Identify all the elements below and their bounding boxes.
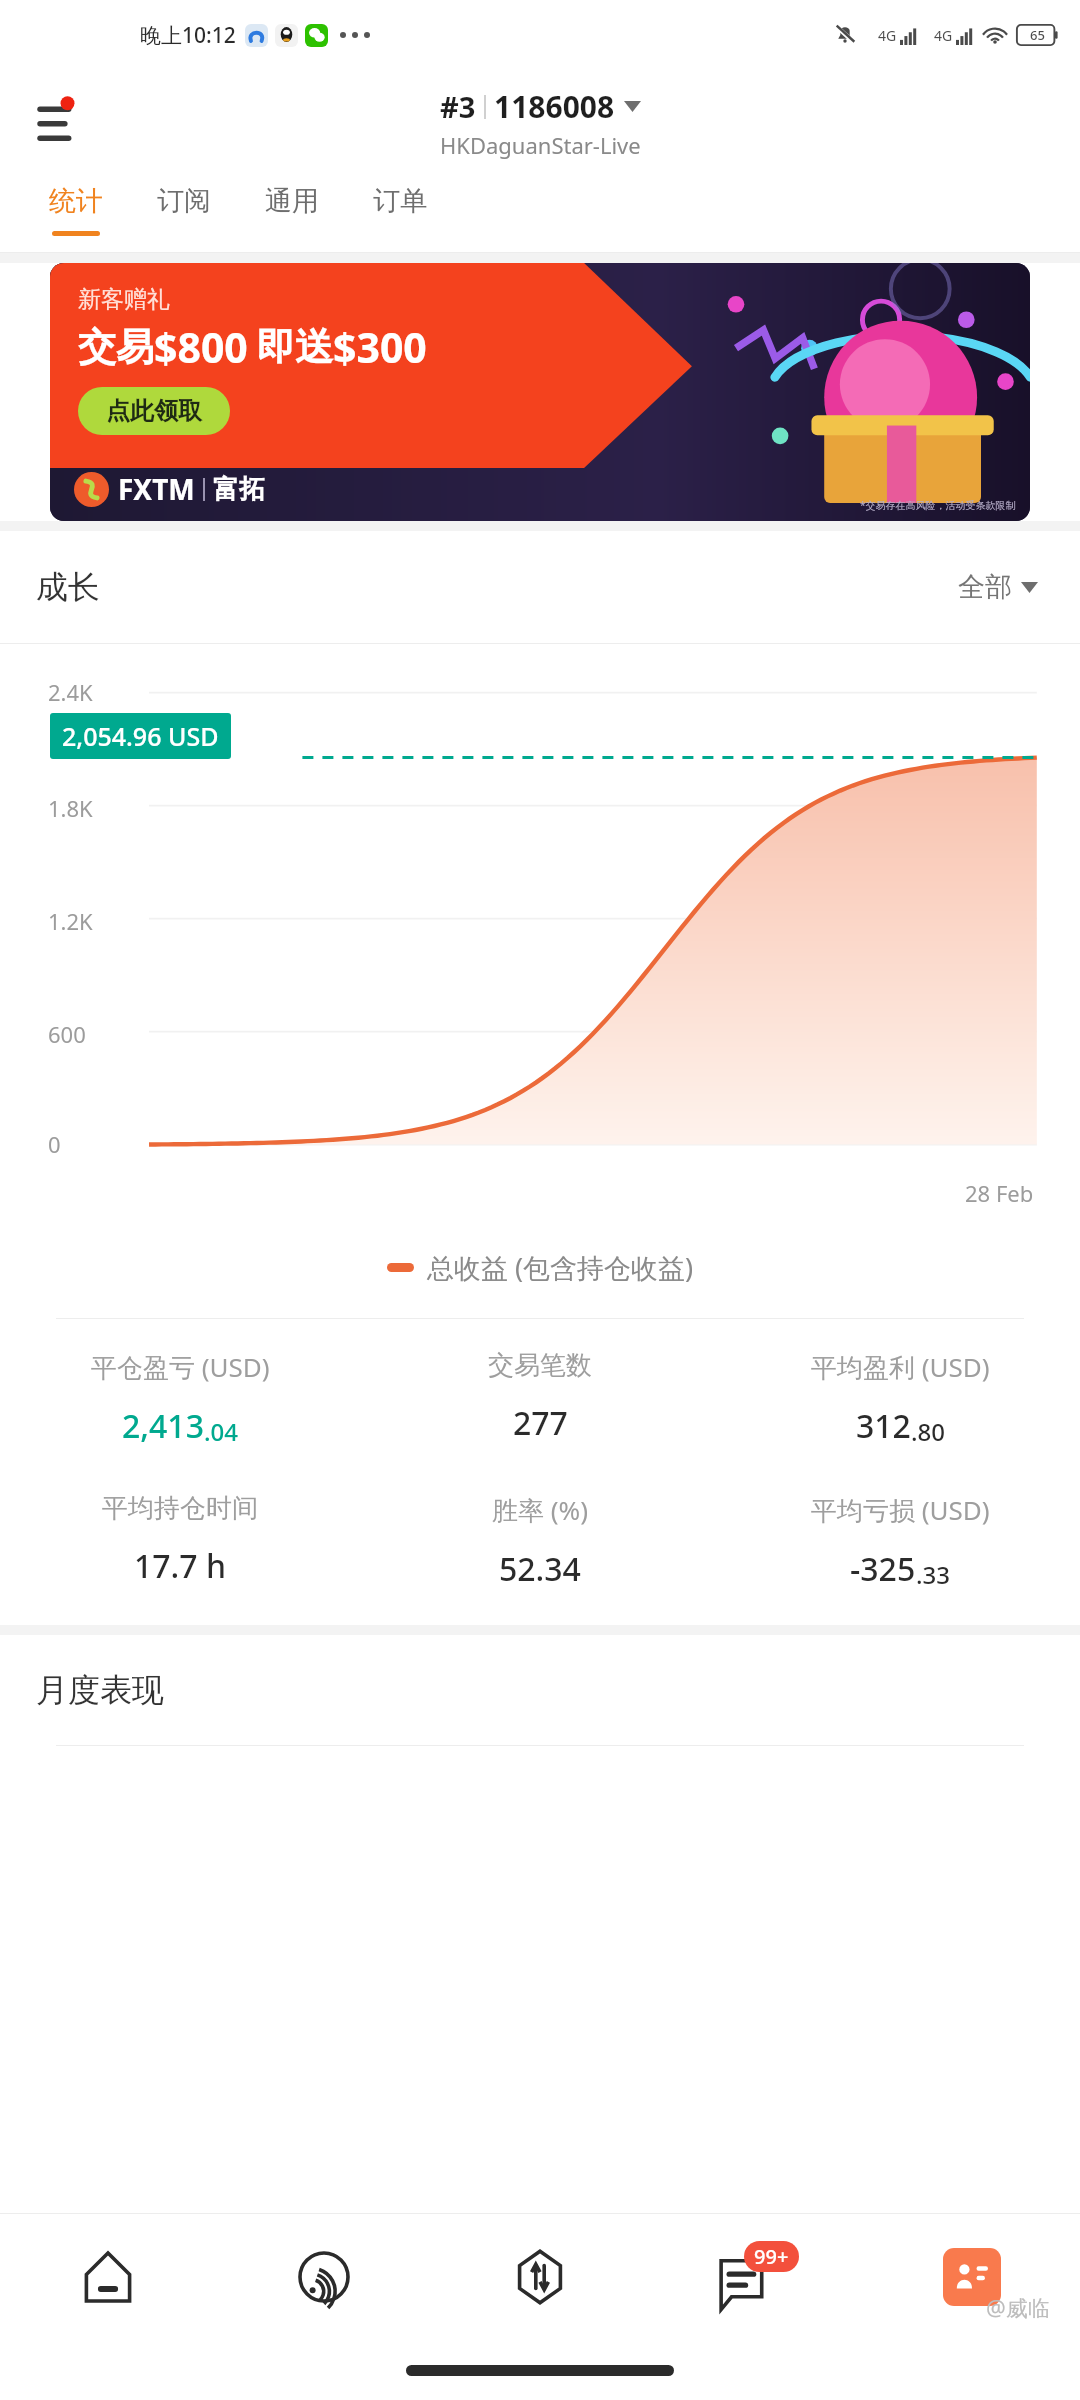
staticText: 即送 [257, 323, 333, 371]
staticText: *交易存在高风险，活动受条款限制 [860, 498, 1016, 512]
button[interactable]: 点此领取 [78, 387, 230, 435]
staticText: 平均盈利 (USD) [811, 1349, 990, 1385]
staticText: -325 [850, 1547, 916, 1591]
staticText: 交易笔数 [488, 1349, 592, 1382]
staticText: 全部 [958, 570, 1012, 604]
staticText: .80 [911, 1415, 945, 1448]
staticText: 4G [878, 26, 897, 45]
staticText: #3 [440, 87, 476, 126]
staticText: 0 [48, 1129, 61, 1159]
staticText: 312 [856, 1404, 911, 1448]
staticText: 新客赠礼 [78, 285, 170, 314]
staticText: 胜率 (%) [492, 1492, 588, 1528]
staticText: 17.7 h [134, 1544, 227, 1588]
button[interactable]: Profile [864, 2214, 1080, 2340]
button[interactable]: #3 [440, 86, 641, 160]
staticText: 28 Feb [965, 1178, 1034, 1208]
staticText: 点此领取 [106, 396, 202, 426]
staticText: 月度表现 [36, 1670, 164, 1710]
button[interactable]: Menu [32, 93, 92, 153]
button[interactable]: 全部 [952, 564, 1044, 610]
button[interactable]: 统计 [22, 176, 130, 252]
button[interactable]: 订阅 [130, 176, 238, 252]
button[interactable]: Home [0, 2214, 216, 2340]
staticText: 成长 [36, 567, 100, 607]
staticText: 平仓盈亏 (USD) [91, 1349, 270, 1385]
staticText: 1186008 [494, 86, 615, 127]
staticText: .33 [916, 1558, 950, 1591]
staticText: 1.8K [48, 793, 93, 823]
staticText: 600 [48, 1019, 86, 1049]
staticText: FXTM [118, 470, 195, 508]
staticText: .04 [204, 1415, 238, 1448]
staticText: 4G [934, 26, 953, 45]
staticText: HKDaguanStar-Live [440, 130, 641, 160]
staticText: 晚上10:12 [140, 21, 236, 50]
staticText: 通用 [265, 184, 319, 218]
staticText: 交易 [78, 323, 154, 371]
staticText: $800 [154, 319, 248, 375]
staticText: 订单 [373, 184, 427, 218]
staticText: 2,413 [122, 1404, 204, 1448]
staticText: 99+ [754, 2243, 789, 2270]
button[interactable]: Messages [648, 2214, 864, 2340]
staticText: 订阅 [157, 184, 211, 218]
staticText: 2,054.96 USD [62, 719, 219, 753]
button[interactable]: Signals [216, 2214, 432, 2340]
staticText: 富拓 [213, 473, 265, 506]
staticText: 统计 [49, 184, 103, 218]
staticText: 平均亏损 (USD) [811, 1492, 990, 1528]
button[interactable]: Trade [432, 2214, 648, 2340]
staticText: 52.34 [499, 1547, 581, 1591]
staticText: $300 [333, 319, 427, 375]
button[interactable]: 新客赠礼 [50, 263, 1030, 521]
staticText: 平均持仓时间 [102, 1492, 258, 1525]
staticText: 277 [513, 1401, 568, 1445]
button[interactable]: 通用 [238, 176, 346, 252]
staticText: @威临 [986, 2292, 1050, 2322]
staticText: 65 [1030, 26, 1045, 44]
staticText: 总收益 (包含持仓收益) [427, 1249, 694, 1286]
staticText: 2.4K [48, 677, 93, 707]
staticText: 1.2K [48, 906, 93, 936]
button[interactable]: 订单 [346, 176, 454, 252]
